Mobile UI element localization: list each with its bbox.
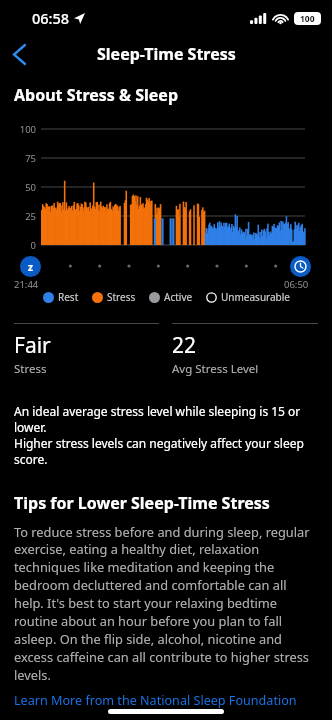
staticText: 06:58 [32, 8, 70, 28]
button[interactable]: Active [149, 290, 193, 304]
staticText: 75 [0, 152, 36, 165]
staticText: 100 [300, 13, 315, 25]
staticText: Learn More from the National Sleep Found… [14, 692, 297, 709]
staticText: About Stress & Sleep [14, 84, 179, 106]
button[interactable]: Unmeasurable [206, 290, 290, 304]
staticText: 06:50 [284, 278, 309, 291]
staticText: Active [164, 290, 193, 304]
staticText: 100 [0, 123, 36, 136]
staticText: Stress [107, 290, 136, 304]
staticText: To reduce stress before and during sleep… [14, 523, 318, 684]
staticText: 0 [0, 239, 36, 252]
staticText: 25 [0, 210, 36, 223]
staticText: 21:44 [14, 278, 39, 291]
button[interactable]: Stress [92, 290, 136, 304]
button[interactable]: Fair [14, 323, 159, 377]
button[interactable]: Rest [43, 290, 79, 304]
staticText: Rest [58, 290, 79, 304]
button[interactable]: 22 [172, 323, 318, 377]
staticText: An ideal average stress level while slee… [14, 403, 318, 467]
staticText: 50 [0, 181, 36, 194]
button[interactable]: Back [3, 38, 35, 70]
staticText: Unmeasurable [221, 290, 290, 304]
staticText: 22 [172, 331, 197, 360]
staticText: Stress [14, 361, 47, 377]
staticText: Sleep-Time Stress [97, 43, 236, 65]
staticText: Fair [14, 331, 51, 360]
staticText: Tips for Lower Sleep-Time Stress [14, 492, 270, 514]
button[interactable]: Learn More from the National Sleep Found… [14, 692, 297, 709]
staticText: z [28, 260, 33, 274]
staticText: Avg Stress Level [172, 361, 259, 377]
